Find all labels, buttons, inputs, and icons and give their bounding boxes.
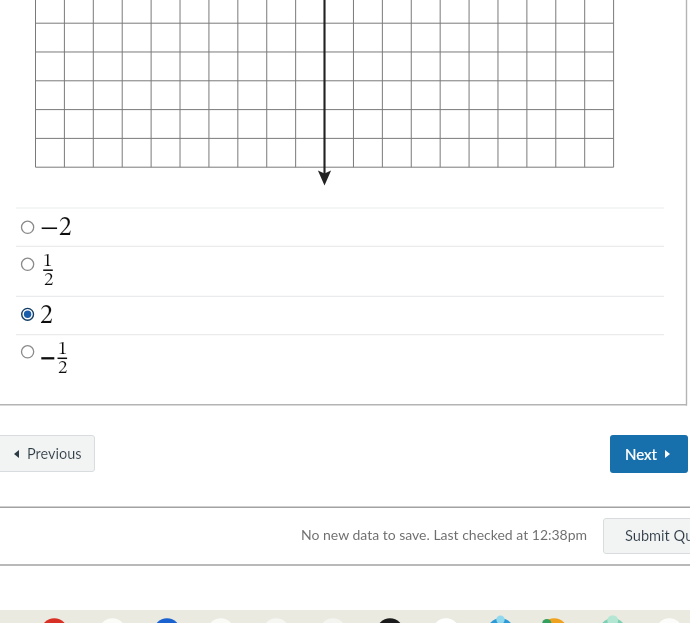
button[interactable]: [0, 209, 690, 247]
button[interactable]: Submit Quiz: [603, 518, 690, 554]
button[interactable]: [0, 296, 690, 334]
button[interactable]: Next: [610, 435, 688, 473]
staticText: 1: [43, 252, 53, 271]
staticText: Submit Quiz: [625, 527, 690, 545]
staticText: Previous: [27, 445, 82, 462]
button[interactable]: [0, 334, 690, 404]
staticText: −2: [40, 215, 72, 241]
staticText: 1: [58, 340, 68, 359]
button[interactable]: [0, 246, 690, 296]
staticText: 2: [44, 271, 54, 290]
staticText: Next: [625, 445, 657, 463]
staticText: No new data to save. Last checked at 12:…: [301, 526, 588, 543]
staticText: 2: [58, 359, 68, 378]
staticText: 2: [40, 303, 53, 329]
button[interactable]: Previous: [0, 435, 95, 472]
